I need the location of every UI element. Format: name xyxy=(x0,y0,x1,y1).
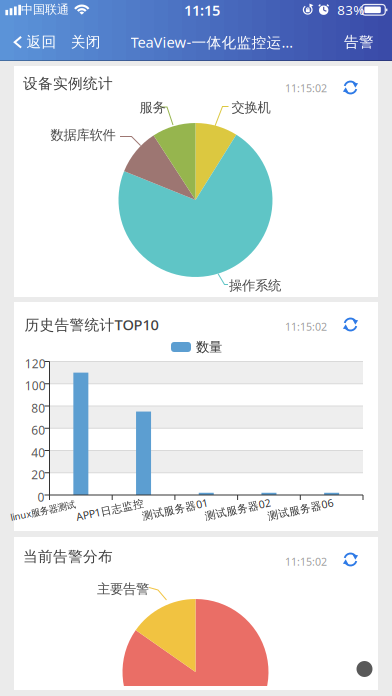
staticText: 11:15:02 xyxy=(285,319,327,334)
button[interactable]: 关闭 xyxy=(66,25,106,59)
staticText: 80 xyxy=(31,400,45,416)
staticText: 主要告警 xyxy=(97,581,149,597)
staticText: 60 xyxy=(31,422,45,438)
staticText: APP1日志监控 xyxy=(75,503,144,517)
staticText: 测试服务器06 xyxy=(267,502,334,516)
staticText: 交换机 xyxy=(231,99,270,116)
staticText: 11:15:02 xyxy=(285,81,327,95)
staticText: 服务 xyxy=(139,99,165,116)
staticText: 历史告警统计TOP10 xyxy=(24,315,158,334)
staticText: 当前告警分布 xyxy=(23,547,113,565)
button[interactable]: 刷新 xyxy=(340,314,360,334)
staticText: 11:15:02 xyxy=(285,554,327,569)
button[interactable]: 返回 xyxy=(12,25,58,59)
staticText: 测试服务器01 xyxy=(141,502,208,516)
staticText: 100 xyxy=(25,378,46,394)
staticText: 11:15 xyxy=(184,0,220,20)
staticText: 返回 xyxy=(26,33,56,51)
staticText: 设备实例统计 xyxy=(23,74,113,92)
staticText: 40 xyxy=(31,444,45,460)
staticText: 20 xyxy=(31,467,45,483)
staticText: 测试服务器02 xyxy=(204,502,271,516)
staticText: 关闭 xyxy=(71,33,101,51)
staticText: 数量 xyxy=(196,339,222,355)
staticText: TeaView-一体化监控运… xyxy=(130,32,293,52)
button[interactable]: 告警 xyxy=(339,25,379,59)
staticText: 告警 xyxy=(344,33,374,51)
staticText: 操作系统 xyxy=(229,277,281,294)
staticText: 中国联通 xyxy=(21,2,69,17)
staticText: 83% xyxy=(337,1,364,19)
staticText: linux服务器测试 xyxy=(10,504,76,517)
button[interactable]: 刷新 xyxy=(340,77,360,97)
staticText: 数据库软件 xyxy=(50,127,115,143)
staticText: 120 xyxy=(25,355,46,371)
button[interactable]: 刷新 xyxy=(340,549,360,569)
button[interactable]: 悬浮球 xyxy=(356,661,372,677)
staticText: 0 xyxy=(38,489,45,505)
